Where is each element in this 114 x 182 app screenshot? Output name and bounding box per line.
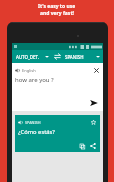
- button[interactable]: English: [15, 68, 36, 73]
- staticText: and very fast!: [40, 10, 74, 17]
- button[interactable]: Share: [89, 142, 97, 150]
- staticText: AUTO_DET.: [16, 54, 39, 60]
- button[interactable]: Clear text: [92, 66, 100, 74]
- button[interactable]: SPANISH: [18, 120, 41, 125]
- button[interactable]: SPANISH: [63, 50, 103, 63]
- button[interactable]: AUTO_DET.: [12, 50, 51, 63]
- staticText: SPANISH: [65, 54, 84, 60]
- staticText: English: [22, 68, 36, 73]
- staticText: It's easy to use: [38, 3, 76, 10]
- staticText: ¿Cómo estás?: [18, 128, 55, 136]
- button[interactable]: Swap languages: [51, 50, 63, 63]
- staticText: SPANISH: [25, 120, 41, 125]
- button[interactable]: Copy: [78, 142, 86, 150]
- staticText: how are you ?: [15, 76, 54, 84]
- button[interactable]: Add to favourites: [89, 118, 97, 126]
- button[interactable]: Translate: [89, 98, 99, 108]
